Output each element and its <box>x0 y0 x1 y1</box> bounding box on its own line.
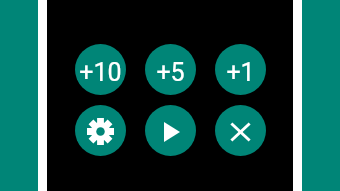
button[interactable]: Settings <box>75 105 126 156</box>
staticText: +5 <box>156 58 185 87</box>
button[interactable]: Cancel timer <box>215 105 266 156</box>
button[interactable]: Add 1 minute <box>215 44 266 95</box>
staticText: +10 <box>79 58 122 87</box>
staticText: +1 <box>226 58 255 87</box>
button[interactable]: Start timer <box>145 105 196 156</box>
button[interactable]: Add 5 minutes <box>145 44 196 95</box>
button[interactable]: Add 10 minutes <box>75 44 126 95</box>
